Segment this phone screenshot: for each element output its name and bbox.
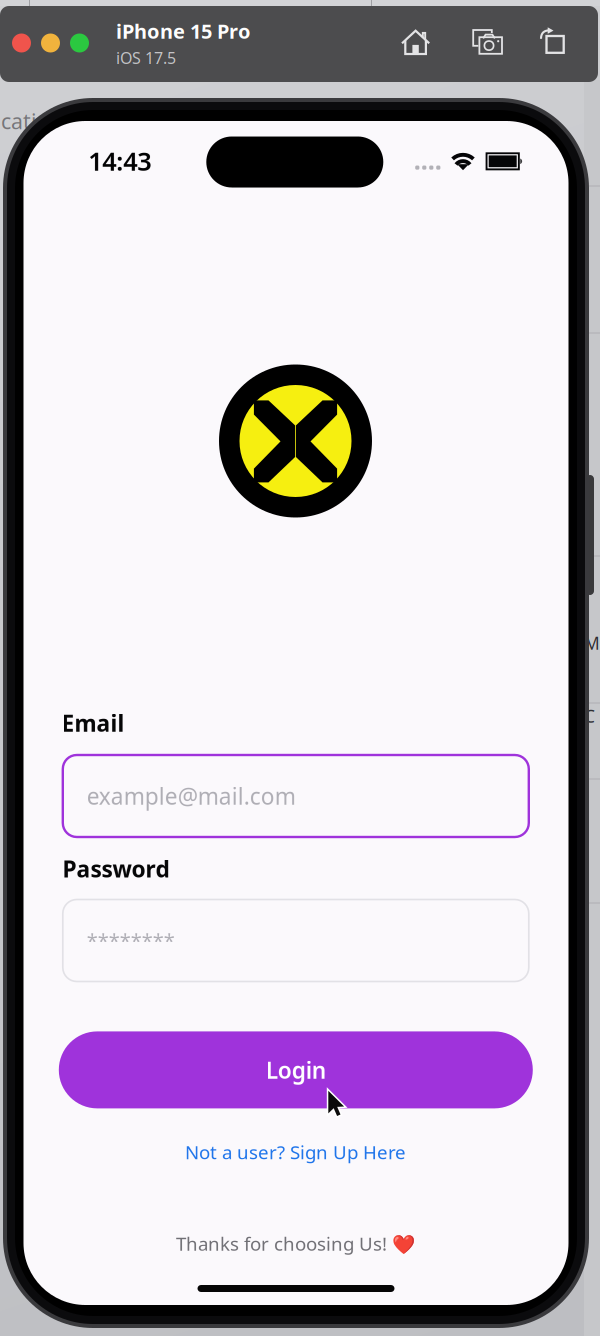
button[interactable]: Close window <box>12 33 31 52</box>
button[interactable]: Screenshot <box>472 29 503 55</box>
staticText: 14:43 <box>88 144 151 178</box>
staticText: Email <box>61 708 124 738</box>
staticText: Login <box>266 1055 326 1085</box>
button[interactable]: Not a user? Sign Up Here <box>85 1135 505 1169</box>
staticText: iPhone 15 Pro <box>116 18 251 44</box>
button[interactable]: Minimise window <box>41 33 60 52</box>
staticText: example@mail.com <box>87 781 296 811</box>
button[interactable]: ******** <box>63 899 529 981</box>
staticText: iOS 17.5 <box>116 47 176 68</box>
staticText: M <box>584 631 600 654</box>
staticText: C <box>584 704 595 727</box>
button[interactable]: Login <box>59 1031 533 1108</box>
staticText: Password <box>62 854 169 884</box>
button[interactable]: example@mail.com <box>63 755 529 837</box>
button[interactable]: Zoom window <box>70 33 89 52</box>
button[interactable]: Rotate device <box>540 27 565 54</box>
staticText: ******** <box>87 927 175 954</box>
staticText: cation <box>1 107 63 135</box>
staticText: Not a user? Sign Up Here <box>185 1140 406 1164</box>
button[interactable]: Home <box>401 28 431 55</box>
staticText: Thanks for choosing Us! ❤️ <box>176 1231 415 1256</box>
